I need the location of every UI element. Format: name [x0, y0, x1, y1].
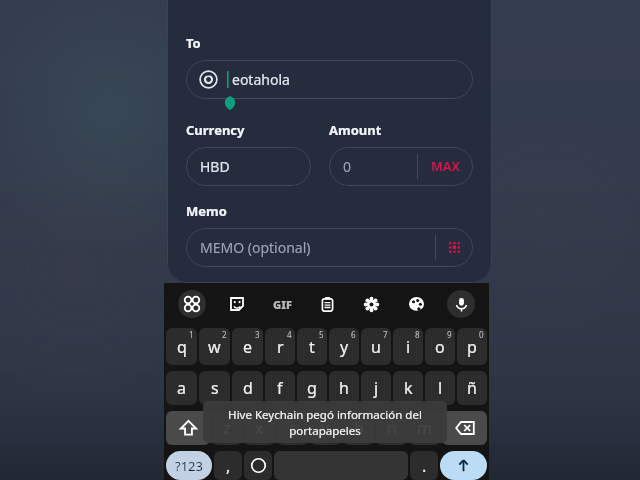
staticText: k — [404, 377, 413, 399]
button[interactable]: w — [199, 328, 230, 365]
staticText: To — [186, 34, 201, 52]
button[interactable]: l — [425, 371, 455, 405]
staticText: u — [371, 336, 381, 358]
button[interactable]: . — [410, 451, 438, 480]
button[interactable]: n — [376, 411, 407, 445]
staticText: g — [307, 377, 317, 399]
button[interactable]: Backspace — [442, 411, 487, 445]
button[interactable]: Voice input — [447, 290, 475, 318]
staticText: m — [417, 417, 432, 439]
staticText: 0 — [343, 157, 352, 176]
button[interactable]: k — [393, 371, 423, 405]
staticText: Currency — [186, 121, 245, 139]
staticText: b — [354, 417, 364, 439]
staticText: 1 — [189, 329, 194, 340]
staticText: ñ — [467, 377, 477, 399]
button[interactable]: Encrypt memo — [448, 228, 461, 267]
button[interactable]: x — [244, 411, 275, 445]
staticText: v — [321, 417, 330, 439]
button[interactable]: ?123 — [166, 451, 212, 480]
button[interactable]: MAX — [418, 147, 473, 186]
staticText: j — [374, 377, 379, 399]
staticText: n — [387, 417, 397, 439]
staticText: , — [226, 455, 231, 477]
button[interactable]: h — [329, 371, 359, 405]
staticText: r — [277, 336, 284, 358]
button[interactable]: a — [166, 371, 197, 405]
staticText: o — [435, 336, 445, 358]
button[interactable]: Theme — [402, 290, 430, 318]
button[interactable]: t — [297, 328, 327, 365]
staticText: 3 — [255, 329, 260, 340]
button[interactable]: Settings — [357, 290, 385, 318]
button[interactable]: g — [297, 371, 327, 405]
staticText: eotahola — [232, 70, 290, 89]
button[interactable]: ñ — [457, 371, 487, 405]
button[interactable]: Stickers — [223, 290, 251, 318]
staticText: MEMO (optional) — [200, 238, 311, 257]
button[interactable]: y — [329, 328, 359, 365]
staticText: 0 — [479, 329, 484, 340]
staticText: 5 — [319, 329, 324, 340]
button[interactable]: q — [166, 328, 197, 365]
staticText: MAX — [431, 158, 460, 175]
button[interactable]: MEMO (optional) — [186, 228, 473, 267]
staticText: p — [467, 336, 477, 358]
button[interactable]: v — [310, 411, 341, 445]
staticText: c — [289, 417, 297, 439]
staticText: d — [243, 377, 253, 399]
button[interactable]: Apps — [178, 290, 206, 318]
staticText: HBD — [200, 157, 230, 176]
staticText: GIF — [273, 297, 292, 312]
staticText: t — [309, 336, 315, 358]
button[interactable]: b — [343, 411, 374, 445]
staticText: 6 — [351, 329, 356, 340]
staticText: . — [422, 455, 427, 477]
button[interactable]: Clipboard — [313, 290, 341, 318]
staticText: Memo — [186, 202, 227, 220]
button[interactable]: f — [265, 371, 295, 405]
button[interactable]: j — [361, 371, 391, 405]
button[interactable]: s — [199, 371, 230, 405]
staticText: s — [211, 377, 219, 399]
staticText: 7 — [383, 329, 388, 340]
button[interactable]: m — [409, 411, 440, 445]
staticText: 8 — [415, 329, 420, 340]
button[interactable]: Shift — [166, 411, 210, 445]
button[interactable]: , — [214, 451, 242, 480]
staticText: y — [340, 336, 349, 358]
staticText: i — [406, 336, 411, 358]
button[interactable]: Enter — [440, 451, 487, 480]
button[interactable]: z — [212, 411, 242, 445]
staticText: w — [208, 336, 221, 358]
staticText: a — [177, 377, 186, 399]
staticText: q — [177, 336, 187, 358]
staticText: ?123 — [175, 457, 203, 475]
staticText: 9 — [447, 329, 452, 340]
button[interactable]: HBD — [186, 147, 311, 186]
staticText: z — [223, 417, 231, 439]
button[interactable]: d — [232, 371, 263, 405]
button[interactable]: u — [361, 328, 391, 365]
button[interactable]: GIF — [268, 290, 296, 318]
staticText: Amount — [329, 121, 382, 139]
staticText: Hive Keychain pegó información del porta… — [215, 407, 435, 438]
staticText: e — [243, 336, 253, 358]
staticText: f — [277, 377, 283, 399]
staticText: x — [255, 417, 264, 439]
button[interactable]: Emoji — [244, 451, 272, 480]
staticText: 2 — [222, 329, 227, 340]
staticText: h — [339, 377, 349, 399]
button[interactable]: i — [393, 328, 423, 365]
staticText: l — [438, 377, 443, 399]
button[interactable]: eotahola — [186, 60, 473, 99]
staticText: 4 — [287, 329, 292, 340]
button[interactable]: c — [277, 411, 308, 445]
button[interactable]: o — [425, 328, 455, 365]
button[interactable]: p — [457, 328, 487, 365]
button[interactable]: r — [265, 328, 295, 365]
button[interactable]: e — [232, 328, 263, 365]
